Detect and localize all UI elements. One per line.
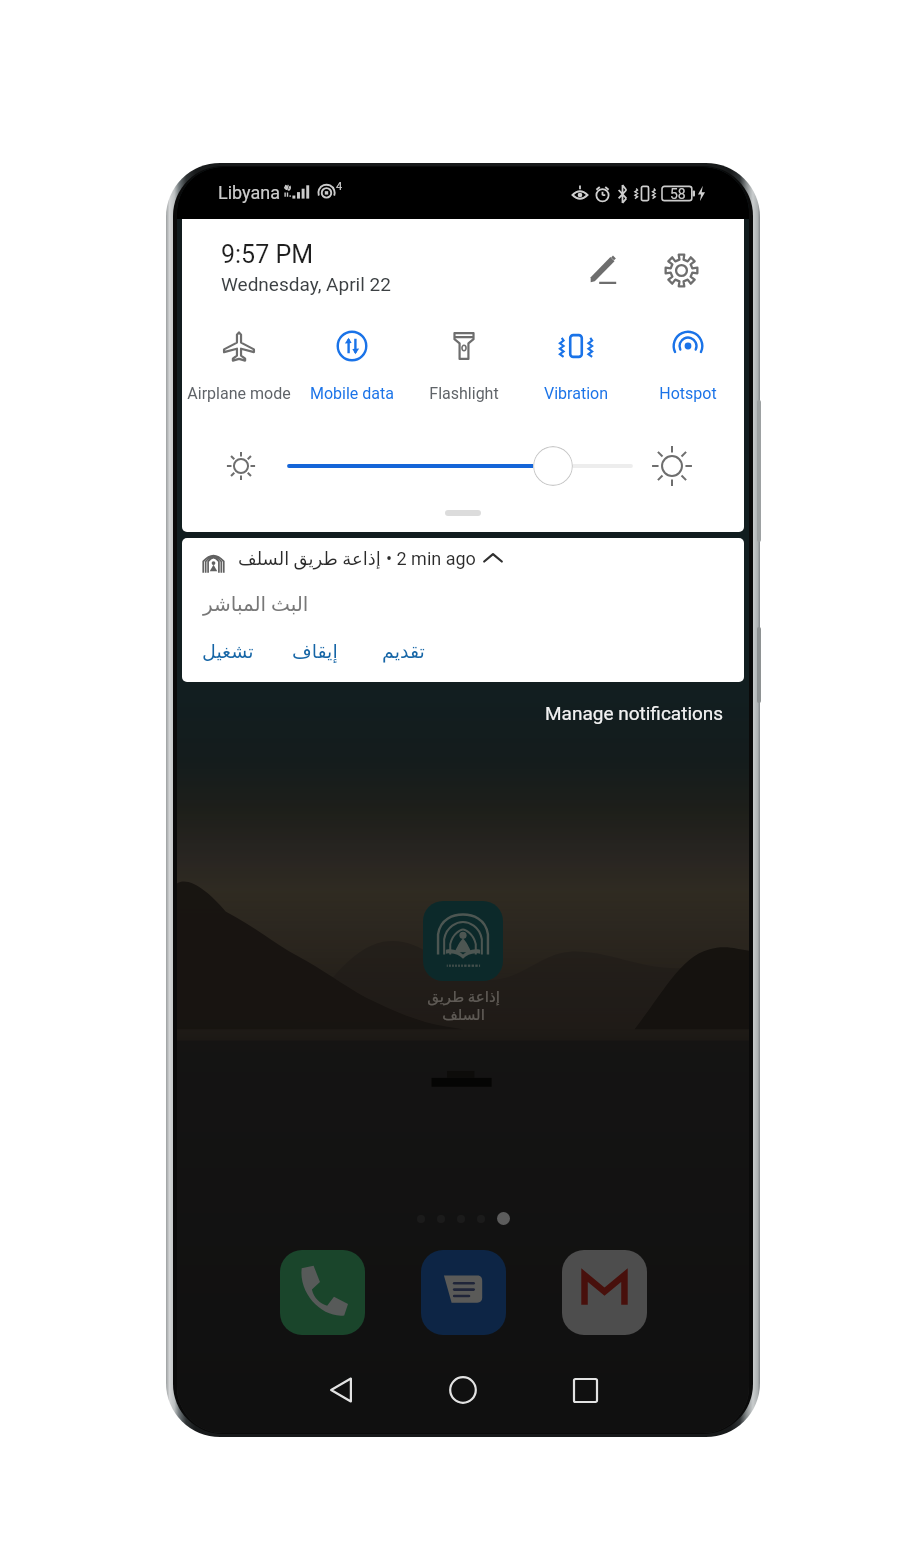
staticText: Wednesday, April 22	[221, 273, 391, 295]
button[interactable]: إيقاف	[280, 633, 350, 669]
staticText: تقديم	[382, 640, 425, 662]
button[interactable]: إذاعة طريق السلف	[182, 538, 744, 682]
staticText: إذاعة طريق السلف	[238, 548, 381, 569]
button[interactable]: Hotspot	[632, 329, 744, 403]
staticText: Hotspot	[659, 384, 717, 403]
button[interactable]: Phone	[280, 1250, 365, 1335]
staticText: تشغيل	[202, 640, 254, 662]
staticText: Mobile data	[310, 384, 394, 403]
button[interactable]: Mobile data	[295, 329, 408, 403]
staticText: إذاعة طريق	[427, 988, 500, 1006]
staticText: Vibration	[544, 384, 608, 403]
button[interactable]: Manage notifications	[541, 698, 728, 728]
button[interactable]: Settings	[657, 246, 705, 294]
button[interactable]: Airplane mode	[182, 329, 295, 403]
staticText: إيقاف	[292, 640, 338, 662]
staticText: Manage notifications	[545, 702, 724, 724]
button[interactable]: Collapse	[445, 510, 481, 516]
button[interactable]: Vibration	[520, 329, 632, 403]
staticText: Libyana	[218, 182, 280, 203]
button[interactable]: Back	[301, 1350, 381, 1430]
button[interactable]: تشغيل	[190, 633, 266, 669]
staticText: 58	[670, 186, 686, 202]
staticText: • 2 min ago	[386, 548, 476, 569]
button[interactable]: Brightness	[533, 446, 573, 486]
button[interactable]: Recents	[545, 1350, 625, 1430]
staticText: 9:57 PM	[221, 240, 314, 269]
button[interactable]: Flashlight	[408, 329, 520, 403]
staticText: السلف	[442, 1006, 485, 1023]
button[interactable]: Edit	[582, 246, 630, 294]
button[interactable]: تقديم	[370, 633, 437, 669]
button[interactable]: إذاعة طريق	[363, 901, 563, 1023]
staticText: Flashlight	[429, 384, 499, 403]
staticText: Airplane mode	[187, 384, 291, 403]
button[interactable]: Gmail	[562, 1250, 647, 1335]
button[interactable]: Home	[423, 1350, 503, 1430]
staticText: البث المباشر	[203, 592, 309, 615]
button[interactable]: Messages	[421, 1250, 506, 1335]
staticText: 4	[336, 180, 343, 193]
